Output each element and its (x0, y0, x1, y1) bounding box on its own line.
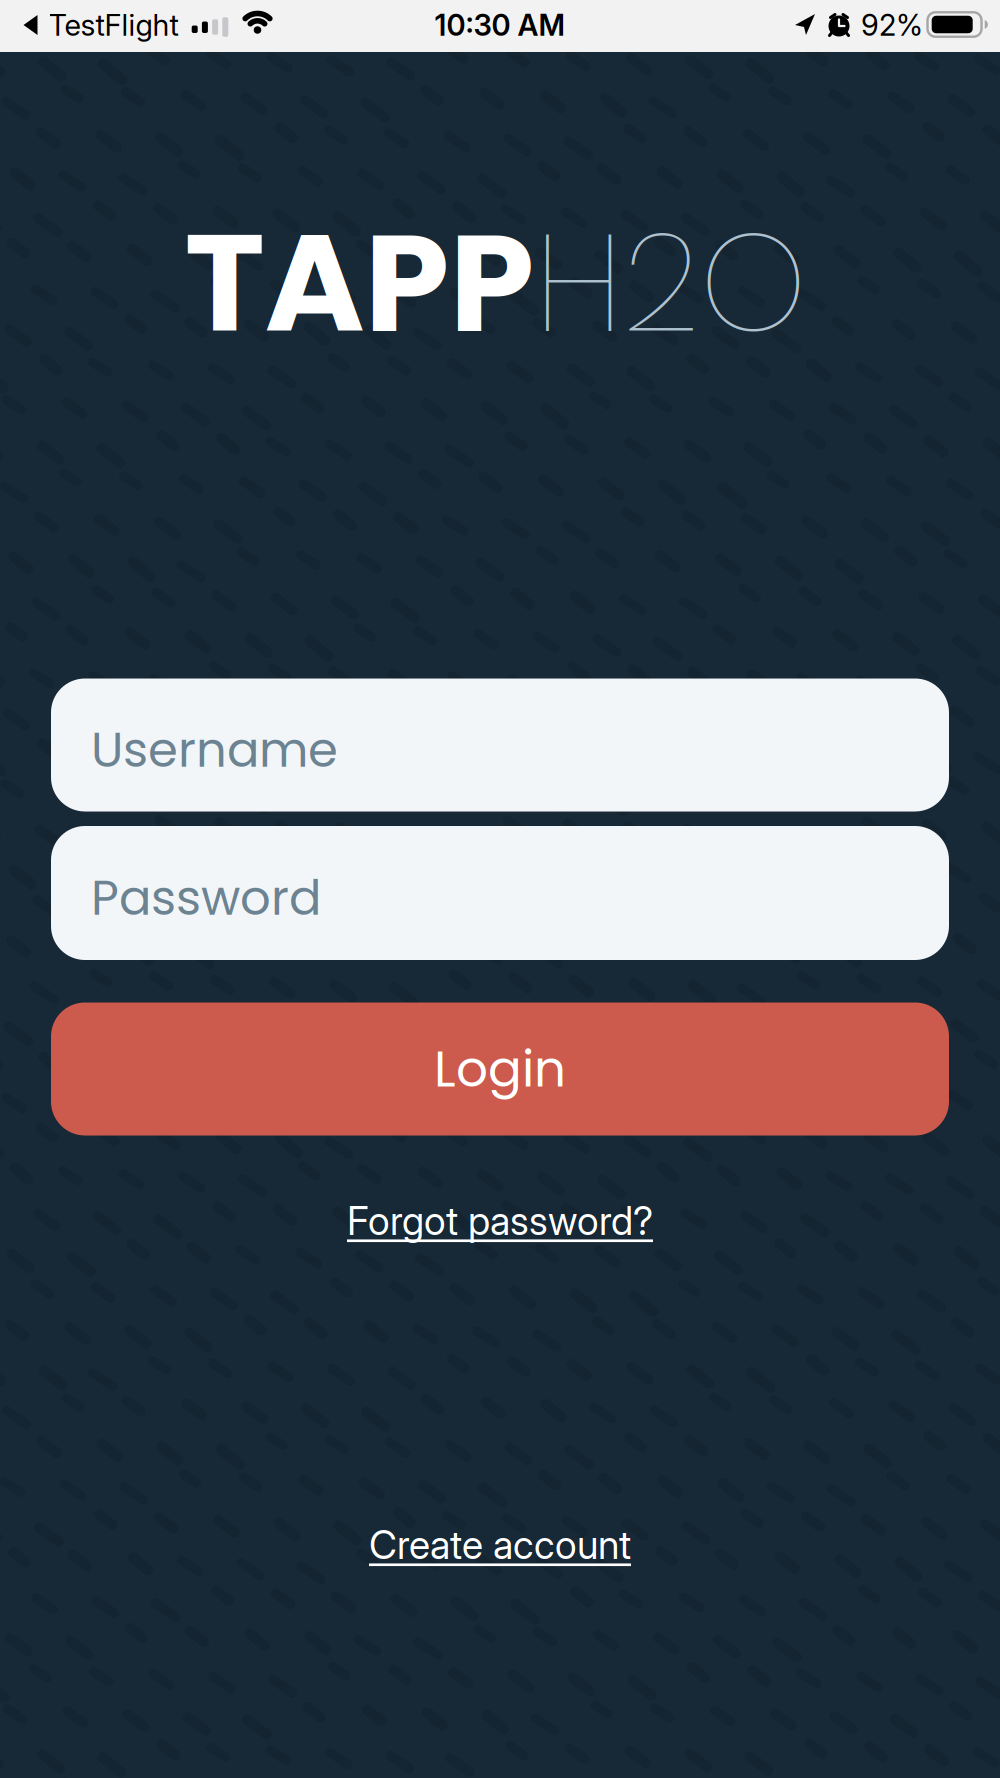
button[interactable]: Forgot password? (347, 1198, 653, 1244)
button[interactable]: Login (51, 1002, 949, 1135)
staticText: TAPP (184, 188, 534, 378)
staticText: TestFlight (48, 8, 178, 42)
staticText: Create account (369, 1522, 631, 1568)
button[interactable]: Back to TestFlight (23, 8, 178, 42)
staticText: H2O (534, 188, 807, 378)
staticText: Forgot password? (347, 1198, 653, 1244)
staticText: Username (91, 716, 338, 784)
button[interactable]: Username (51, 678, 949, 811)
button[interactable]: Create account (369, 1522, 631, 1568)
staticText: 10:30 AM (434, 8, 565, 42)
staticText: Password (91, 864, 321, 932)
staticText: Login (434, 1034, 566, 1104)
staticText: 92% (861, 8, 923, 42)
button[interactable]: Password (51, 826, 949, 960)
